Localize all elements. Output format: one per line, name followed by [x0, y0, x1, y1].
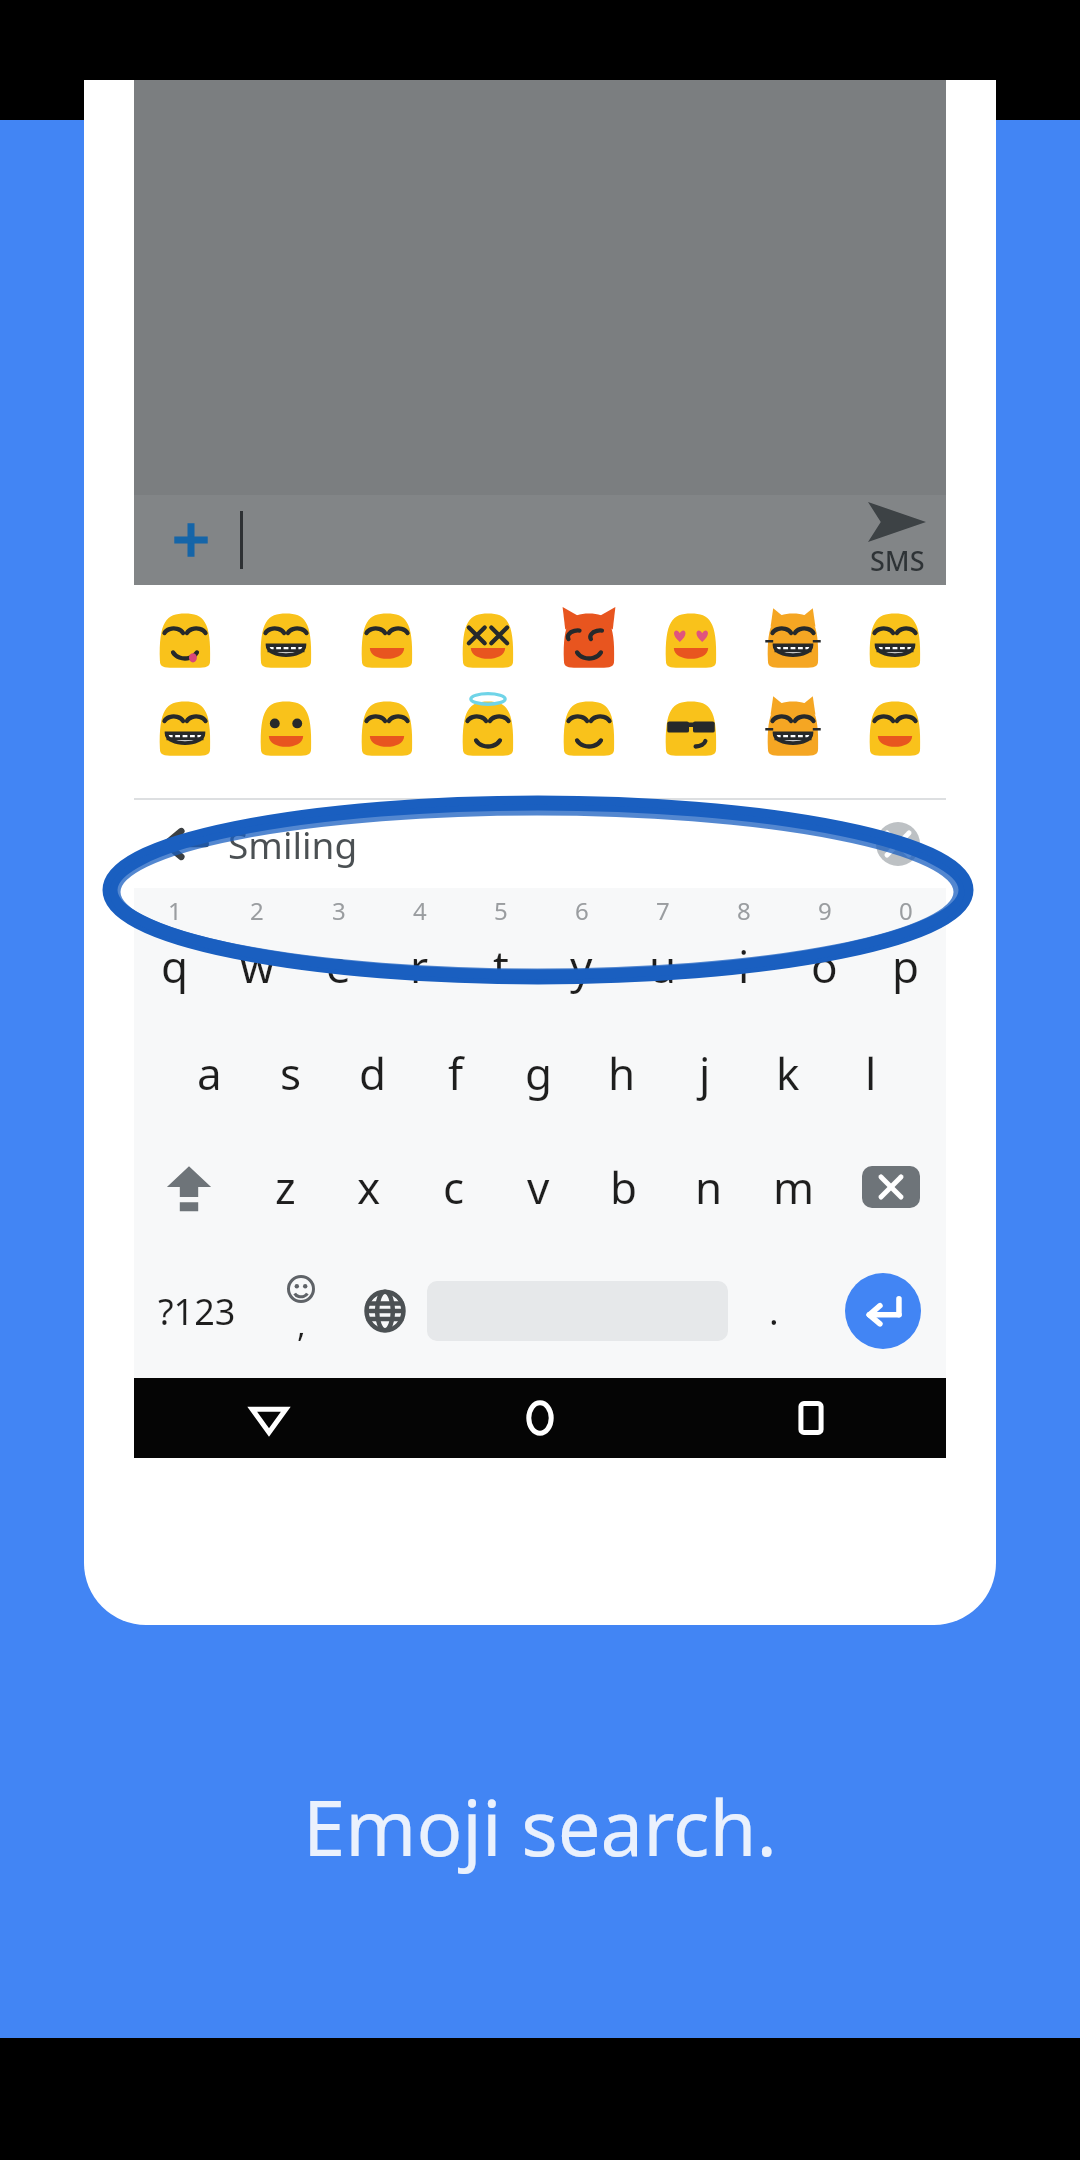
- button[interactable]: n: [666, 1130, 751, 1244]
- staticText: v: [527, 1157, 550, 1217]
- button[interactable]: Home: [404, 1378, 675, 1458]
- staticText: 2: [250, 894, 264, 927]
- button[interactable]: Clear: [876, 822, 920, 866]
- button[interactable]: Emoji: [538, 695, 640, 761]
- button[interactable]: Send SMS: [868, 502, 926, 579]
- staticText: u: [649, 936, 677, 996]
- button[interactable]: Back: [134, 800, 946, 888]
- button[interactable]: e: [298, 922, 379, 1010]
- button[interactable]: Emoji: [336, 695, 437, 761]
- staticText: Smiling: [228, 819, 876, 869]
- staticText: i: [738, 936, 750, 996]
- staticText: b: [610, 1157, 638, 1217]
- staticText: g: [525, 1043, 553, 1103]
- staticText: m: [773, 1157, 815, 1217]
- button[interactable]: g: [497, 1016, 580, 1130]
- button[interactable]: q: [134, 922, 216, 1010]
- staticText: t: [493, 936, 509, 996]
- staticText: f: [448, 1043, 464, 1103]
- button[interactable]: x: [327, 1130, 411, 1244]
- button[interactable]: Back: [134, 1378, 404, 1458]
- button[interactable]: .: [728, 1244, 820, 1378]
- staticText: Emoji search.: [0, 1775, 1080, 1879]
- staticText: 9: [818, 894, 832, 927]
- staticText: c: [443, 1157, 465, 1217]
- button[interactable]: Emoji: [336, 607, 437, 673]
- button[interactable]: Emoji: [640, 607, 742, 673]
- staticText: k: [776, 1043, 800, 1103]
- staticText: x: [357, 1157, 381, 1217]
- staticText: l: [865, 1043, 877, 1103]
- staticText: .: [769, 1287, 779, 1336]
- button[interactable]: Emoji: [437, 607, 538, 673]
- staticText: 1: [168, 894, 182, 927]
- button[interactable]: z: [243, 1130, 327, 1244]
- button[interactable]: Emoji: [134, 695, 235, 761]
- button[interactable]: v: [496, 1130, 581, 1244]
- staticText: SMS: [870, 542, 925, 579]
- button[interactable]: k: [746, 1016, 829, 1130]
- staticText: w: [240, 936, 275, 996]
- button[interactable]: a: [168, 1016, 250, 1130]
- staticText: 8: [737, 894, 751, 927]
- button[interactable]: s: [250, 1016, 332, 1130]
- button[interactable]: Shift: [134, 1130, 243, 1244]
- staticText: j: [699, 1043, 711, 1103]
- staticText: 5: [494, 894, 508, 927]
- staticText: o: [811, 936, 838, 996]
- button[interactable]: o: [784, 922, 865, 1010]
- button[interactable]: p: [865, 922, 946, 1010]
- staticText: z: [275, 1157, 296, 1217]
- button[interactable]: w: [216, 922, 298, 1010]
- staticText: 6: [575, 894, 589, 927]
- button[interactable]: Attach: [164, 513, 218, 567]
- button[interactable]: Emoji keyboard: [259, 1244, 343, 1378]
- staticText: e: [326, 936, 351, 996]
- staticText: 4: [413, 894, 427, 927]
- button[interactable]: t: [460, 922, 541, 1010]
- button[interactable]: Back: [156, 815, 214, 873]
- button[interactable]: y: [541, 922, 622, 1010]
- button[interactable]: Emoji: [844, 607, 946, 673]
- button[interactable]: Emoji: [742, 607, 844, 673]
- button[interactable]: c: [411, 1130, 496, 1244]
- staticText: ?123: [158, 1287, 236, 1336]
- button[interactable]: Emoji: [235, 695, 336, 761]
- staticText: p: [892, 936, 920, 996]
- button[interactable]: r: [379, 922, 460, 1010]
- staticText: d: [359, 1043, 387, 1103]
- button[interactable]: Emoji: [640, 695, 742, 761]
- button[interactable]: Emoji: [538, 607, 640, 673]
- button[interactable]: Emoji: [134, 607, 235, 673]
- button[interactable]: b: [581, 1130, 666, 1244]
- staticText: r: [410, 936, 429, 996]
- button[interactable]: m: [751, 1130, 836, 1244]
- button[interactable]: ?123: [134, 1244, 259, 1378]
- button[interactable]: l: [829, 1016, 912, 1130]
- staticText: y: [570, 936, 593, 996]
- button[interactable]: Enter: [820, 1244, 946, 1378]
- staticText: 0: [899, 894, 913, 927]
- button[interactable]: Emoji: [235, 607, 336, 673]
- button[interactable]: Emoji: [437, 695, 538, 761]
- button[interactable]: Change language: [343, 1244, 427, 1378]
- staticText: q: [161, 936, 189, 996]
- button[interactable]: Backspace: [836, 1130, 946, 1244]
- staticText: n: [695, 1157, 723, 1217]
- button[interactable]: j: [663, 1016, 746, 1130]
- staticText: ,: [297, 1303, 306, 1347]
- staticText: h: [608, 1043, 636, 1103]
- button[interactable]: i: [703, 922, 784, 1010]
- button[interactable]: d: [332, 1016, 414, 1130]
- button[interactable]: h: [580, 1016, 663, 1130]
- button[interactable]: Emoji: [742, 695, 844, 761]
- button[interactable]: Emoji: [844, 695, 946, 761]
- staticText: 3: [332, 894, 346, 927]
- staticText: s: [280, 1043, 302, 1103]
- staticText: a: [197, 1043, 222, 1103]
- button[interactable]: Recents: [675, 1378, 946, 1458]
- button[interactable]: u: [622, 922, 703, 1010]
- button[interactable]: f: [414, 1016, 497, 1130]
- staticText: 7: [656, 894, 670, 927]
